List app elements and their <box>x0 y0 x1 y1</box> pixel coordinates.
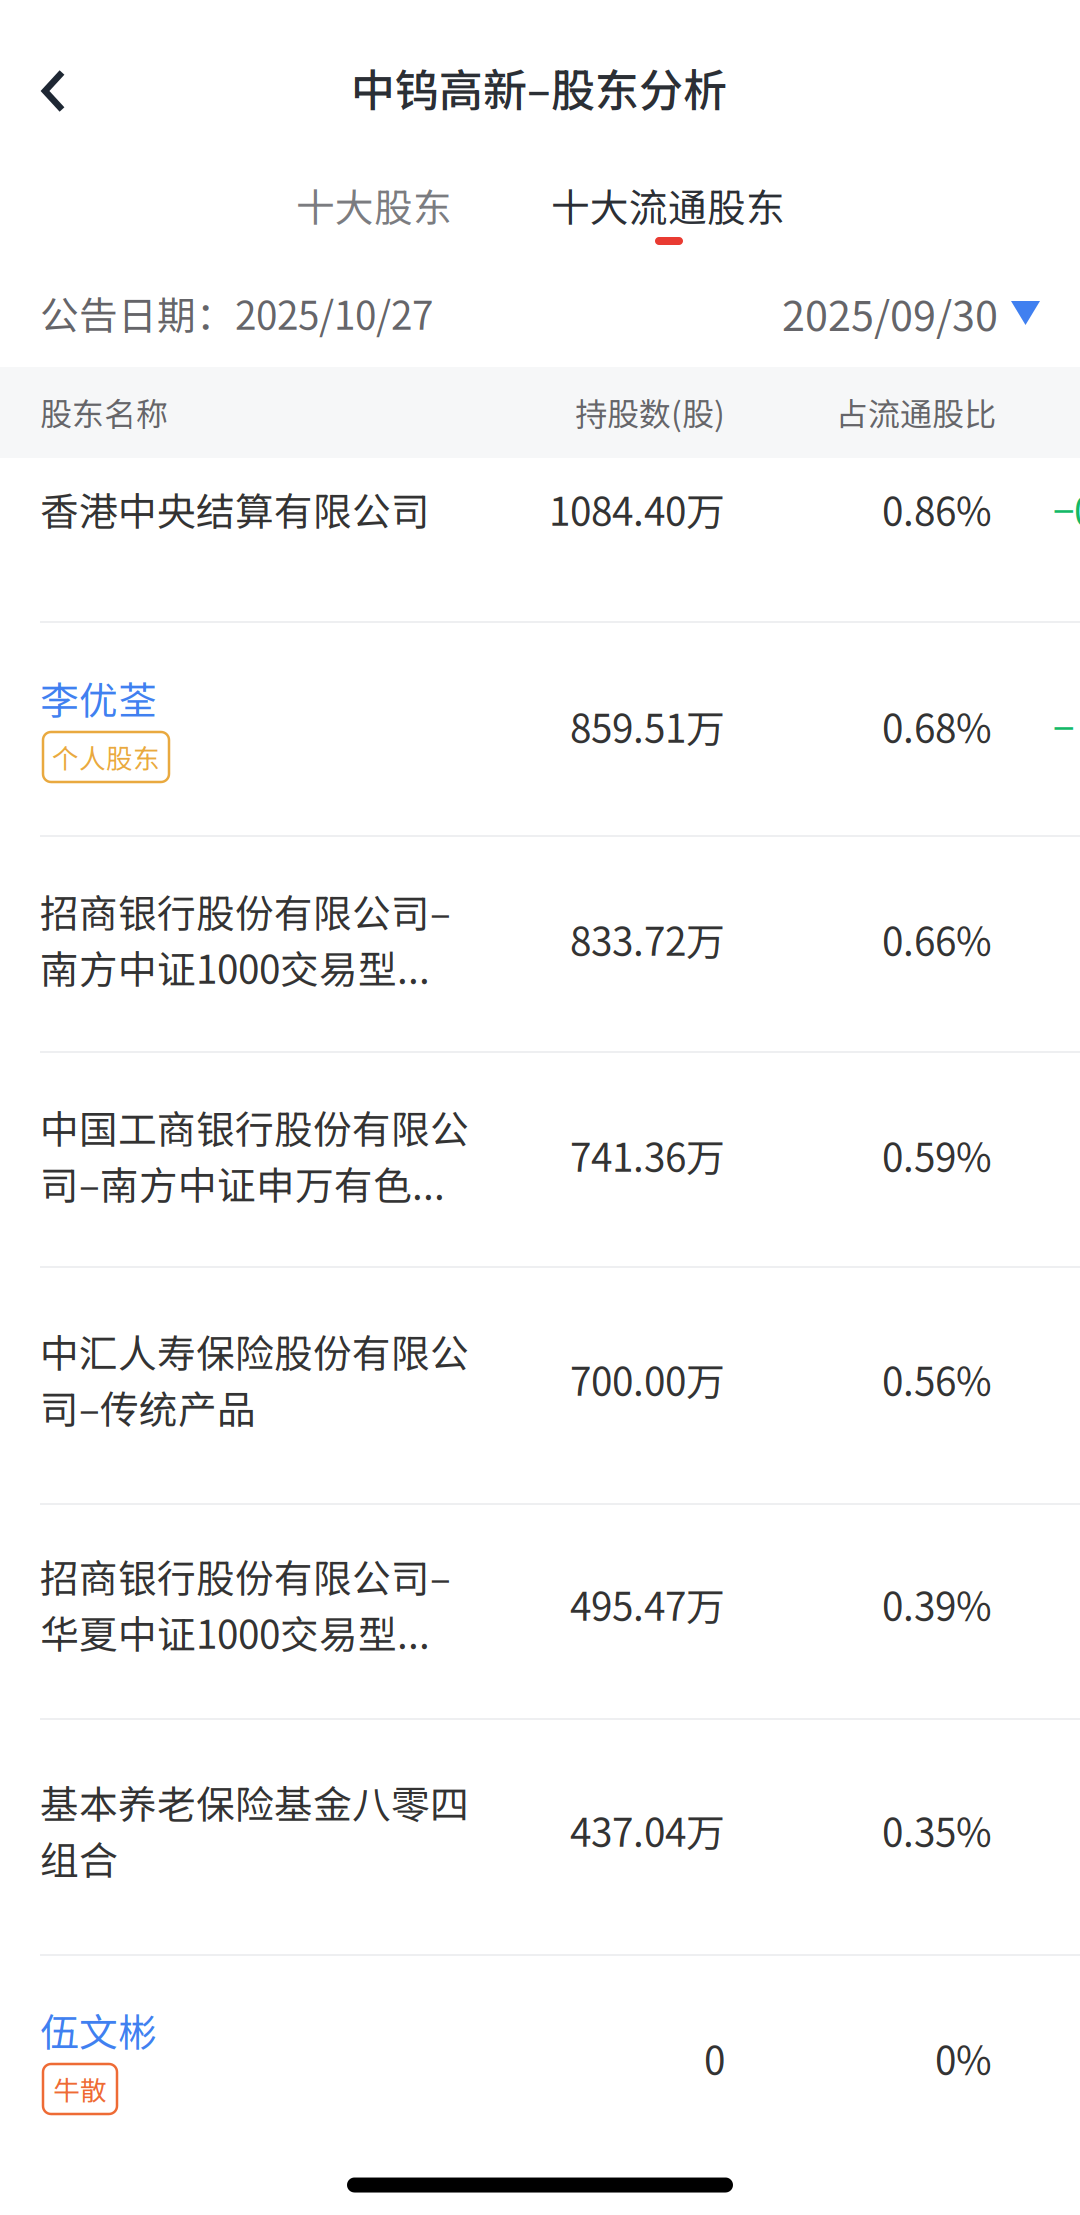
button[interactable]: 中汇人寿保险股份有限公 <box>0 1267 1080 1504</box>
staticText: 0.39% <box>882 1576 992 1632</box>
staticText: 牛散 <box>53 2070 107 2108</box>
staticText: 741.36万 <box>570 1127 725 1183</box>
staticText: 0.68% <box>882 698 992 754</box>
button[interactable]: 十大流通股东 <box>518 157 818 253</box>
staticText: 华夏中证1000交易型... <box>40 1604 430 1660</box>
staticText: 司–南方中证申万有色... <box>40 1155 445 1211</box>
button[interactable]: 香港中央结算有限公司 <box>0 458 1080 622</box>
staticText: 占流通股比 <box>836 389 996 435</box>
staticText: 南方中证1000交易型... <box>40 939 430 995</box>
staticText: 中钨高新–股东分析 <box>351 55 727 119</box>
staticText: 0 <box>704 2030 725 2086</box>
staticText: 中国工商银行股份有限公 <box>40 1099 469 1155</box>
staticText: 伍文彬 <box>40 2002 157 2058</box>
button[interactable]: Back <box>1 36 106 146</box>
staticText: 0% <box>935 2030 992 2086</box>
staticText: 0.59% <box>882 1127 992 1183</box>
staticText: 李优荃 <box>40 670 157 726</box>
staticText: 859.51万 <box>570 698 725 754</box>
staticText: −0 <box>1053 481 1080 537</box>
staticText: 700.00万 <box>570 1351 725 1407</box>
staticText: 0.66% <box>882 911 992 967</box>
button[interactable]: 招商银行股份有限公司– <box>0 1504 1080 1719</box>
button[interactable]: 招商银行股份有限公司– <box>0 836 1080 1052</box>
staticText: 公告日期：2025/10/27 <box>40 285 433 341</box>
staticText: 持股数(股) <box>575 389 725 435</box>
button[interactable]: 中国工商银行股份有限公 <box>0 1052 1080 1267</box>
staticText: 1084.40万 <box>549 481 725 537</box>
button[interactable]: 十大股东 <box>249 157 499 253</box>
staticText: 招商银行股份有限公司– <box>40 883 451 939</box>
staticText: − <box>1053 698 1074 754</box>
staticText: 2025/09/30 <box>782 283 998 343</box>
staticText: 十大股东 <box>296 177 452 233</box>
button[interactable]: 基本养老保险基金八零四 <box>0 1719 1080 1955</box>
staticText: 香港中央结算有限公司 <box>40 481 430 537</box>
staticText: 0.35% <box>882 1802 992 1858</box>
staticText: 437.04万 <box>570 1802 725 1858</box>
staticText: 个人股东 <box>52 738 160 776</box>
staticText: 股东名称 <box>40 389 168 435</box>
staticText: 495.47万 <box>570 1576 725 1632</box>
staticText: 0.86% <box>882 481 992 537</box>
staticText: 833.72万 <box>570 911 725 967</box>
staticText: 招商银行股份有限公司– <box>40 1548 451 1604</box>
staticText: 十大流通股东 <box>551 177 785 233</box>
button[interactable]: 伍文彬 <box>0 1955 1080 2160</box>
staticText: 基本养老保险基金八零四 <box>40 1774 469 1830</box>
button[interactable]: 2025/09/30 <box>782 265 1040 361</box>
staticText: 0.56% <box>882 1351 992 1407</box>
staticText: 司–传统产品 <box>40 1379 256 1435</box>
button[interactable]: 李优荃 <box>0 622 1080 836</box>
staticText: 组合 <box>40 1830 118 1886</box>
staticText: 中汇人寿保险股份有限公 <box>40 1323 469 1379</box>
